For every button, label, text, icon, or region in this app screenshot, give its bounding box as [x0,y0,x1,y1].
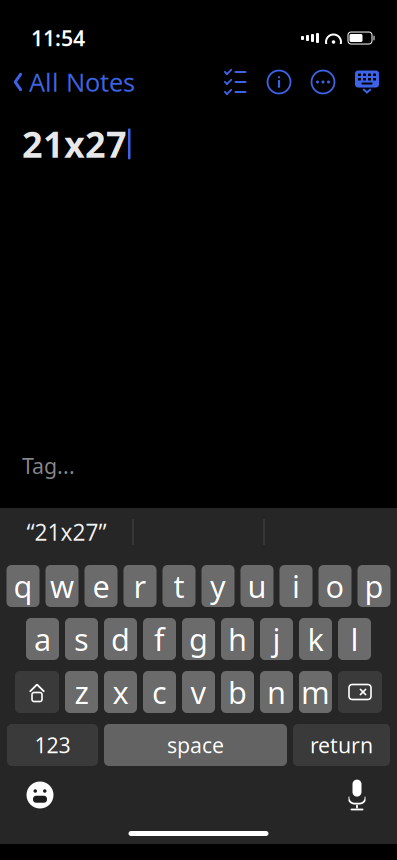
staticText: q [13,566,32,606]
button[interactable]: Delete [338,671,382,713]
button[interactable]: o [318,565,351,607]
staticText: w [50,566,74,606]
staticText: o [325,566,344,606]
staticText: “21x27” [26,517,106,547]
button[interactable]: k [299,618,332,660]
button[interactable]: f [143,618,176,660]
staticText: g [189,619,208,659]
staticText: 21x27 [22,120,127,168]
button[interactable]: All Notes [0,59,135,105]
staticText: All Notes [29,65,135,99]
button[interactable]: r [123,565,156,607]
button[interactable]: More [301,64,345,100]
button[interactable]: q [6,565,39,607]
button[interactable]: x [104,671,137,713]
staticText: Tag... [22,452,75,480]
button[interactable]: Hide Keyboard [345,64,389,100]
button[interactable]: space [104,724,287,766]
staticText: b [228,672,247,712]
staticText: l [350,619,358,659]
button[interactable]: n [260,671,293,713]
staticText: 11:54 [31,24,85,52]
button[interactable]: 123 [7,724,98,766]
staticText: return [310,731,373,759]
button[interactable]: Checklist [213,64,257,100]
staticText: y [210,566,226,606]
button[interactable]: Shift [15,671,59,713]
button[interactable]: Emoji [18,776,62,814]
button[interactable]: Dictation [335,776,379,814]
button[interactable]: e [84,565,117,607]
button[interactable]: b [221,671,254,713]
button[interactable]: s [65,618,98,660]
button[interactable]: v [182,671,215,713]
staticText: r [133,566,146,606]
staticText: j [272,619,280,659]
button[interactable]: g [182,618,215,660]
staticText: k [307,619,323,659]
button[interactable]: a [26,618,59,660]
button[interactable]: u [240,565,273,607]
button[interactable]: l [338,618,371,660]
staticText: c [152,672,167,712]
button[interactable]: y [201,565,234,607]
button[interactable]: return [293,724,390,766]
button[interactable]: i [279,565,312,607]
staticText: m [301,672,330,712]
button[interactable]: j [260,618,293,660]
button[interactable]: t [162,565,195,607]
button[interactable]: m [299,671,332,713]
button[interactable]: c [143,671,176,713]
button[interactable]: “21x27” [0,510,132,554]
staticText: n [267,672,286,712]
staticText: i [292,566,300,606]
staticText: s [74,619,89,659]
staticText: z [74,672,88,712]
button[interactable]: d [104,618,137,660]
staticText: f [154,619,165,659]
staticText: 123 [34,731,70,759]
staticText: d [111,619,130,659]
staticText: t [173,566,184,606]
staticText: p [364,566,383,606]
button[interactable]: p [357,565,390,607]
staticText: e [92,566,109,606]
staticText: u [247,566,266,606]
staticText: x [112,672,128,712]
button[interactable]: z [65,671,98,713]
staticText: space [167,731,224,759]
staticText: h [228,619,247,659]
button[interactable]: h [221,618,254,660]
staticText: a [34,619,51,659]
button[interactable]: w [45,565,78,607]
button[interactable]: Info [257,64,301,100]
staticText: v [190,672,206,712]
